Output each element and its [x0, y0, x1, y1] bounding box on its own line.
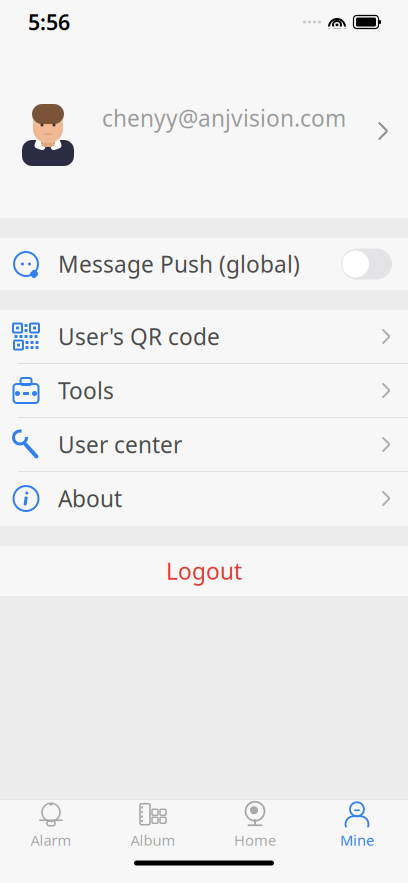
staticText: User center	[58, 429, 182, 459]
staticText: Tools	[58, 375, 114, 405]
button[interactable]: About	[0, 472, 408, 526]
button[interactable]: User center	[0, 418, 408, 472]
button[interactable]: Message Push toggle	[341, 248, 392, 279]
staticText: Logout	[166, 556, 242, 586]
staticText: chenyy@anjvision.com	[102, 103, 346, 133]
button[interactable]: Home	[204, 795, 306, 854]
button[interactable]: Album	[102, 795, 204, 854]
staticText: Album	[130, 830, 175, 850]
button[interactable]: User's QR code	[0, 310, 408, 364]
staticText: Mine	[340, 830, 374, 850]
staticText: Alarm	[30, 830, 71, 850]
staticText: Home	[234, 830, 276, 850]
staticText: User's QR code	[58, 321, 220, 351]
button[interactable]: chenyy@anjvision.com	[0, 44, 408, 218]
button[interactable]: Tools	[0, 364, 408, 418]
button[interactable]: Alarm	[0, 795, 102, 854]
staticText: Message Push (global)	[58, 249, 300, 279]
button[interactable]: Mine	[306, 795, 408, 854]
staticText: About	[58, 483, 122, 513]
staticText: 5:56	[28, 8, 70, 36]
button[interactable]: Logout	[0, 546, 408, 596]
